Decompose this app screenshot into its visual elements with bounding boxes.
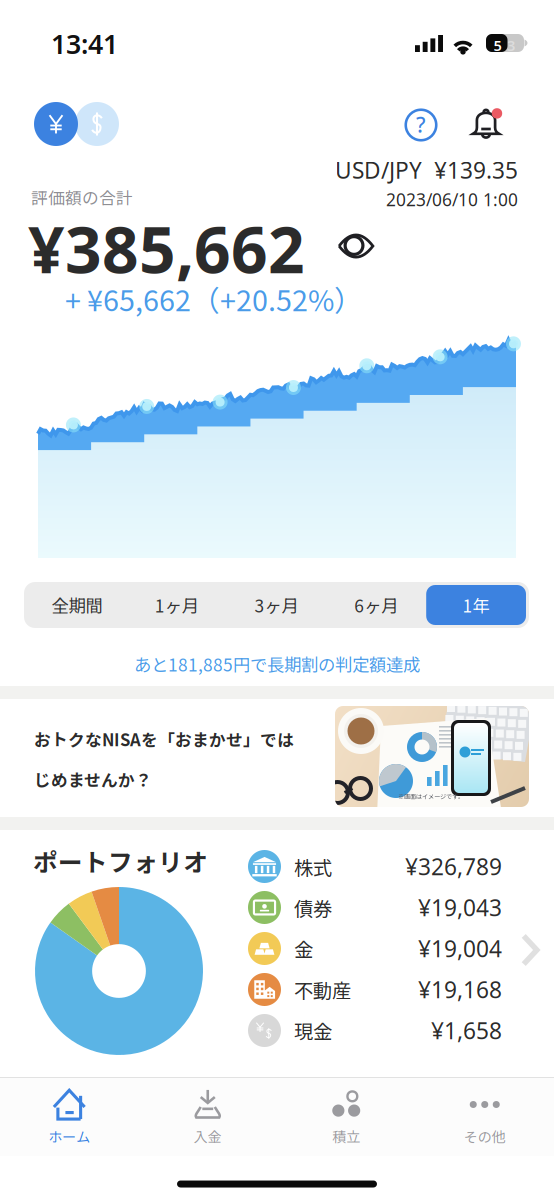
button[interactable]: ホーム: [0, 1078, 138, 1156]
staticText: 5: [493, 35, 501, 55]
button[interactable]: あと181,885円で長期割の判定額達成: [0, 643, 554, 685]
button[interactable]: Notifications: [465, 99, 511, 145]
button[interactable]: Switch currency: [34, 102, 119, 146]
staticText: ¥19,004: [418, 933, 502, 963]
staticText: 3: [507, 35, 515, 55]
staticText: 3ヶ月: [254, 592, 298, 618]
staticText: ¥19,168: [418, 974, 502, 1004]
staticText: 1ヶ月: [155, 592, 199, 618]
button[interactable]: おトクなNISAを「おまかせ」では じめませんか？: [0, 699, 554, 817]
staticText: 1年: [463, 592, 490, 618]
staticText: 全期間: [51, 592, 102, 618]
staticText: その他: [464, 1126, 506, 1146]
staticText: 積立: [332, 1126, 360, 1146]
staticText: 現金: [294, 1016, 332, 1044]
staticText: 株式: [294, 852, 332, 880]
staticText: ¥385,662: [28, 206, 305, 291]
button[interactable]: 1年: [426, 585, 526, 625]
staticText: 債券: [294, 893, 332, 921]
staticText: 不動産: [294, 975, 351, 1003]
staticText: ¥326,789: [405, 851, 502, 881]
button[interactable]: 1ヶ月: [127, 585, 227, 625]
staticText: あと181,885円で長期割の判定額達成: [134, 651, 420, 677]
staticText: ¥1,658: [431, 1015, 502, 1045]
staticText: ポートフォリオ: [33, 843, 208, 879]
button[interactable]: 6ヶ月: [326, 585, 426, 625]
staticText: ?: [416, 110, 426, 139]
staticText: 金: [294, 934, 313, 962]
staticText: ¥19,043: [418, 892, 502, 922]
staticText: ホーム: [48, 1126, 90, 1146]
button[interactable]: 積立: [277, 1078, 415, 1156]
staticText: ※画面はイメージです。: [398, 792, 464, 801]
staticText: 入金: [194, 1126, 222, 1146]
button[interactable]: 入金: [138, 1078, 277, 1156]
staticText: 6ヶ月: [354, 592, 398, 618]
button[interactable]: 全期間: [27, 585, 127, 625]
staticText: + ¥65,662（+20.52%）: [65, 278, 363, 319]
staticText: 13:41: [51, 26, 118, 61]
staticText: USD/JPY ¥139.35: [335, 155, 518, 185]
button[interactable]: その他: [415, 1078, 554, 1156]
button[interactable]: 3ヶ月: [227, 585, 326, 625]
staticText: 2023/06/10 1:00: [386, 188, 518, 211]
button[interactable]: Help: [398, 102, 444, 148]
staticText: おトクなNISAを「おまかせ」では じめませんか？: [34, 727, 294, 791]
staticText: 評価額の合計: [31, 185, 133, 209]
button[interactable]: ポートフォリオ: [0, 830, 554, 1070]
button[interactable]: Hide amount: [330, 224, 382, 267]
